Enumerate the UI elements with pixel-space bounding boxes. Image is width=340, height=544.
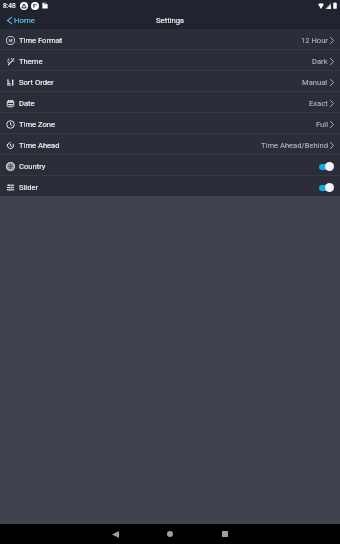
button[interactable]: Back [105,524,125,544]
staticText: 8:48 [3,2,16,10]
staticText: Time Zone [19,120,55,129]
button[interactable]: Time Format [0,29,340,49]
staticText: Full [316,120,328,129]
button[interactable]: Home [7,11,35,29]
button[interactable]: Sort Order [0,71,340,91]
button[interactable]: Time Ahead [0,134,340,154]
button[interactable]: Theme [0,50,340,70]
staticText: Settings [156,16,185,25]
staticText: 12 Hour [301,36,328,45]
staticText: Time Ahead/Behind [261,141,328,150]
staticText: Dark [312,57,328,66]
staticText: Sort Order [19,78,54,87]
button[interactable]: Country [0,155,340,175]
staticText: Home [14,16,35,25]
button[interactable]: Recents [215,524,235,544]
staticText: Theme [19,57,43,66]
staticText: Exact [309,99,328,108]
staticText: Date [19,99,35,108]
staticText: Manual [302,78,328,87]
staticText: Time Ahead [19,141,60,150]
staticText: Time Format [19,36,63,45]
staticText: Slider [19,183,39,192]
staticText: Country [19,162,46,171]
button[interactable]: Date [0,92,340,112]
button[interactable]: Time Zone [0,113,340,133]
button[interactable]: Slider [0,176,340,196]
button[interactable]: Home [160,524,180,544]
